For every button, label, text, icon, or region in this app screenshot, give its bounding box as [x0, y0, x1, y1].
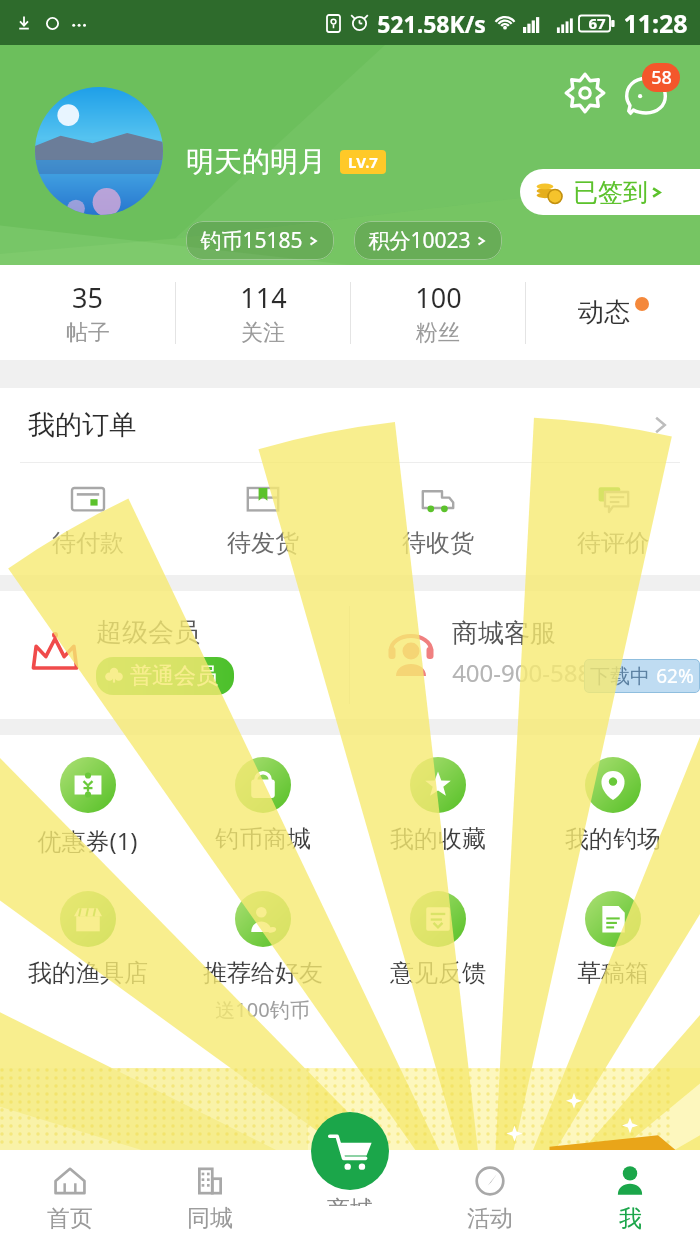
- staticText: 粉丝: [416, 319, 460, 347]
- button[interactable]: 动态: [526, 265, 700, 360]
- button[interactable]: 35: [0, 265, 175, 360]
- button[interactable]: 我的钓场: [525, 751, 700, 860]
- staticText: 35: [72, 279, 103, 316]
- staticText: 明天的明月: [186, 144, 326, 179]
- staticText: 待评价: [577, 528, 649, 558]
- staticText: 关注: [241, 319, 285, 347]
- staticText: 钓币15185: [200, 226, 303, 255]
- button[interactable]: 我: [560, 1150, 700, 1244]
- button[interactable]: 同城: [140, 1150, 280, 1244]
- button[interactable]: 我的订单: [0, 388, 700, 462]
- button[interactable]: 超级会员: [0, 591, 349, 719]
- staticText: 首页: [47, 1204, 93, 1233]
- staticText: 我的收藏: [390, 824, 486, 854]
- button[interactable]: 意见反馈: [350, 885, 525, 994]
- button[interactable]: Settings: [562, 70, 608, 116]
- staticText: 下载中: [590, 664, 650, 689]
- staticText: 待发货: [227, 528, 299, 558]
- button[interactable]: Messages: [622, 73, 670, 121]
- button[interactable]: 首页: [0, 1150, 140, 1244]
- staticText: 积分10023: [368, 226, 471, 255]
- staticText: 58: [651, 65, 672, 90]
- button[interactable]: Profile photo: [35, 87, 163, 215]
- button[interactable]: 草稿箱: [525, 885, 700, 994]
- button[interactable]: 待发货: [175, 463, 350, 575]
- staticText: 商城: [327, 1195, 373, 1206]
- button[interactable]: 积分10023: [354, 221, 502, 260]
- staticText: 我: [619, 1204, 642, 1233]
- button[interactable]: [0, 1068, 700, 1150]
- staticText: 活动: [467, 1204, 513, 1233]
- staticText: 400-900-5882: [452, 656, 605, 689]
- staticText: 我的渔具店: [28, 958, 148, 988]
- staticText: 62%: [656, 663, 694, 689]
- staticText: 已签到: [573, 177, 648, 208]
- staticText: 草稿箱: [577, 958, 649, 988]
- button[interactable]: 普通会员: [96, 657, 234, 695]
- button[interactable]: 推荐给好友: [175, 885, 350, 1029]
- staticText: 普通会员: [130, 662, 218, 690]
- staticText: 521.58K/s: [377, 8, 486, 39]
- staticText: 商城客服: [452, 617, 556, 650]
- button[interactable]: 待收货: [350, 463, 525, 575]
- staticText: 待收货: [402, 528, 474, 558]
- staticText: 我的订单: [28, 408, 136, 442]
- button[interactable]: 钓币商城: [175, 751, 350, 860]
- button[interactable]: 钓币15185: [186, 221, 334, 260]
- button[interactable]: 100: [351, 265, 525, 360]
- staticText: 意见反馈: [390, 958, 486, 988]
- staticText: 11:28: [623, 6, 688, 40]
- staticText: 同城: [187, 1204, 233, 1233]
- button[interactable]: 114: [176, 265, 350, 360]
- button[interactable]: 已签到: [520, 169, 700, 215]
- staticText: 114: [240, 279, 287, 316]
- button[interactable]: 商城客服: [350, 591, 700, 719]
- staticText: 67: [588, 13, 606, 33]
- staticText: LV.7: [348, 152, 378, 172]
- staticText: 100: [415, 279, 462, 316]
- button[interactable]: 待付款: [0, 463, 175, 575]
- staticText: 送100钓币: [215, 996, 310, 1023]
- button[interactable]: 优惠券(1): [0, 751, 175, 863]
- staticText: 帖子: [66, 319, 110, 347]
- staticText: 我的钓场: [565, 824, 661, 854]
- staticText: 推荐给好友: [203, 958, 323, 988]
- button[interactable]: 我的渔具店: [0, 885, 175, 994]
- staticText: 超级会员: [96, 616, 200, 649]
- button[interactable]: 活动: [420, 1150, 560, 1244]
- staticText: 钓币商城: [215, 824, 311, 854]
- button[interactable]: 我的收藏: [350, 751, 525, 860]
- staticText: 待付款: [52, 528, 124, 558]
- staticText: 优惠券(1): [37, 824, 138, 857]
- button[interactable]: 商城: [311, 1112, 389, 1206]
- button[interactable]: 待评价: [525, 463, 700, 575]
- staticText: 动态: [578, 296, 630, 329]
